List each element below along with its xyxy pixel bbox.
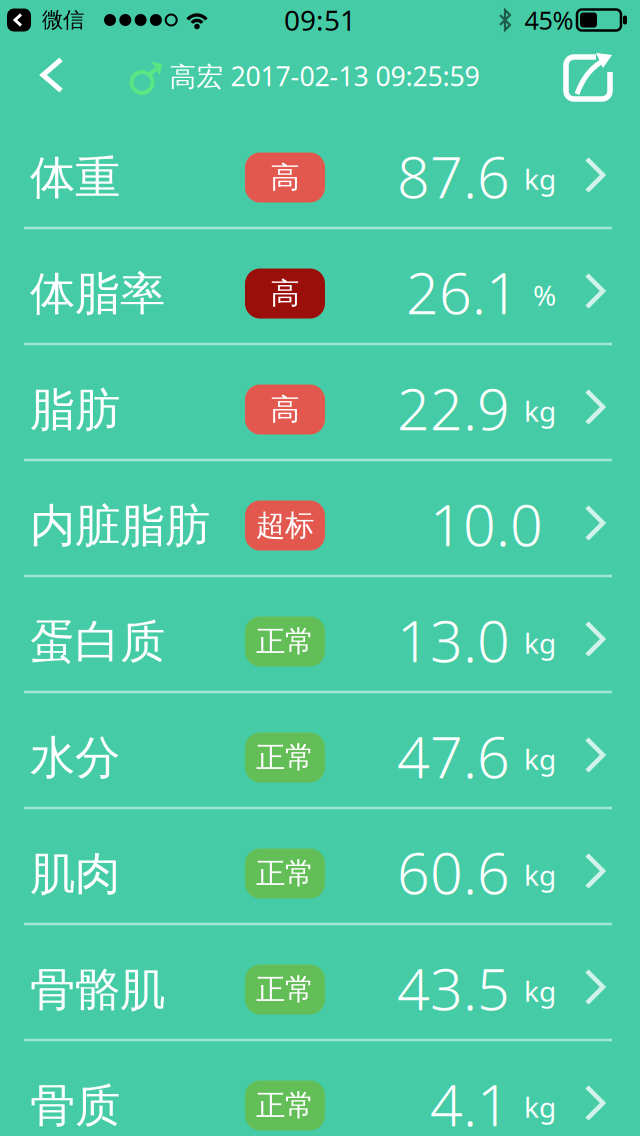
- staticText: 正常: [256, 739, 314, 775]
- staticText: 脂肪: [30, 382, 120, 438]
- button[interactable]: 骨质: [0, 1040, 640, 1136]
- staticText: 蛋白质: [30, 614, 165, 670]
- staticText: 10.0: [430, 486, 543, 562]
- staticText: 微信: [42, 7, 84, 33]
- staticText: 骨骼肌: [30, 962, 165, 1018]
- button[interactable]: 内脏脂肪: [0, 460, 640, 576]
- staticText: 47.6: [397, 718, 510, 794]
- staticText: 高: [270, 159, 299, 195]
- button[interactable]: Back: [22, 45, 82, 105]
- staticText: %: [533, 276, 556, 314]
- button[interactable]: 肌肉: [0, 808, 640, 924]
- staticText: 26.1: [406, 254, 519, 330]
- staticText: 体重: [30, 150, 120, 206]
- staticText: 高: [270, 391, 299, 427]
- staticText: kg: [524, 1088, 556, 1126]
- staticText: 正常: [256, 623, 314, 659]
- button[interactable]: 体脂率: [0, 228, 640, 344]
- staticText: 87.6: [397, 138, 510, 214]
- staticText: 正常: [256, 971, 314, 1007]
- staticText: kg: [524, 160, 556, 198]
- staticText: 4.1: [430, 1066, 510, 1136]
- staticText: 高宏 2017-02-13 09:25:59: [169, 58, 479, 94]
- staticText: 60.6: [397, 834, 510, 910]
- staticText: 43.5: [397, 950, 510, 1026]
- staticText: 45%: [524, 3, 573, 37]
- staticText: 水分: [30, 730, 120, 786]
- staticText: 体脂率: [30, 266, 165, 322]
- staticText: kg: [524, 856, 556, 894]
- button[interactable]: 蛋白质: [0, 576, 640, 692]
- button[interactable]: 水分: [0, 692, 640, 808]
- staticText: 13.0: [397, 602, 510, 678]
- staticText: 22.9: [397, 370, 510, 446]
- button[interactable]: 骨骼肌: [0, 924, 640, 1040]
- staticText: 骨质: [30, 1078, 120, 1134]
- staticText: 高: [270, 275, 299, 311]
- button[interactable]: 体重: [0, 112, 640, 228]
- staticText: kg: [524, 740, 556, 778]
- button[interactable]: Share: [563, 52, 613, 100]
- staticText: 正常: [256, 855, 314, 891]
- button[interactable]: 脂肪: [0, 344, 640, 460]
- staticText: kg: [524, 972, 556, 1010]
- staticText: 肌肉: [30, 846, 120, 902]
- staticText: kg: [524, 624, 556, 662]
- staticText: 正常: [256, 1087, 314, 1123]
- staticText: 09:51: [284, 1, 356, 39]
- staticText: 超标: [256, 507, 314, 543]
- staticText: 内脏脂肪: [30, 498, 210, 554]
- staticText: kg: [524, 392, 556, 430]
